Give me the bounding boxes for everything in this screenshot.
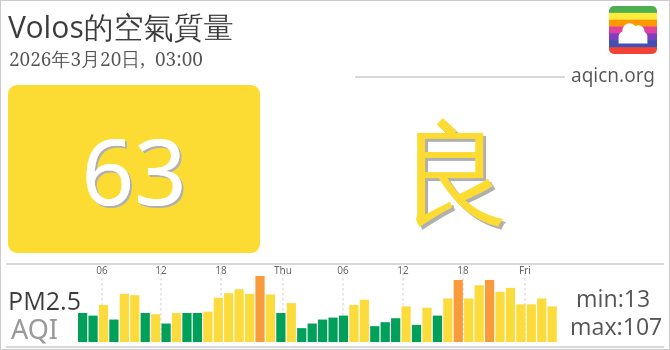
staticText: Thu — [274, 263, 292, 277]
button[interactable]: aqicn.org logo — [609, 6, 657, 54]
staticText: 18 — [457, 263, 469, 277]
staticText: AQI — [11, 310, 58, 347]
staticText: aqicn.org — [571, 62, 656, 88]
staticText: 06 — [96, 263, 108, 277]
staticText: 2026年3月20日, 03:00 — [9, 46, 203, 72]
staticText: Fri — [519, 263, 531, 277]
staticText: 18 — [215, 263, 227, 277]
staticText: PM2.5 — [8, 283, 82, 317]
staticText: min:13 — [576, 282, 651, 313]
staticText: 63 — [81, 107, 187, 232]
staticText: 63 — [83, 109, 189, 234]
staticText: max:107 — [570, 310, 663, 341]
staticText: 12 — [397, 263, 409, 277]
staticText: 06 — [337, 263, 349, 277]
button[interactable]: 63 — [8, 85, 260, 253]
staticText: 良 — [399, 105, 511, 235]
staticText: Volos的空氣質量 — [8, 6, 234, 47]
staticText: 良 — [402, 108, 514, 238]
staticText: 12 — [155, 263, 167, 277]
